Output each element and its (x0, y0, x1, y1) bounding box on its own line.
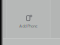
staticText: Add Phone (19, 23, 37, 29)
